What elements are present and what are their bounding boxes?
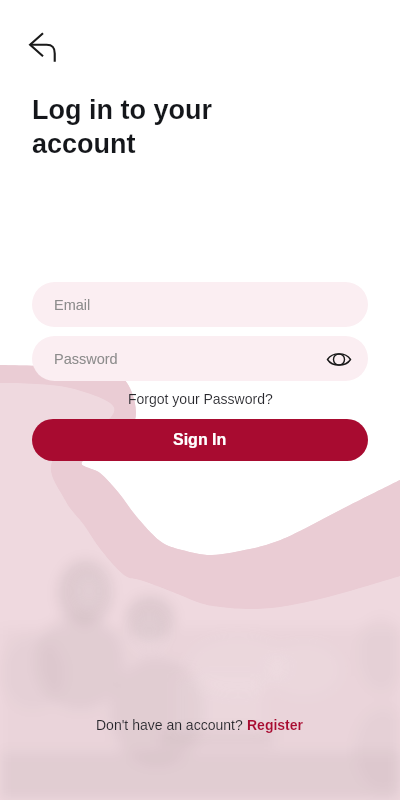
button[interactable]: Register bbox=[247, 717, 304, 733]
staticText: Email bbox=[54, 297, 91, 313]
button[interactable]: Password bbox=[32, 336, 368, 381]
button[interactable]: Forgot your Password? bbox=[0, 388, 400, 410]
button[interactable]: Email bbox=[32, 282, 368, 327]
staticText: Password bbox=[54, 351, 118, 367]
staticText: Log in to your account bbox=[32, 95, 212, 159]
staticText: Register bbox=[247, 717, 304, 733]
button[interactable]: Sign In bbox=[32, 419, 368, 461]
button[interactable]: Show password bbox=[324, 344, 354, 374]
staticText: Don't have an account? bbox=[96, 717, 247, 733]
staticText: Forgot your Password? bbox=[128, 391, 273, 407]
staticText: Sign In bbox=[173, 431, 227, 449]
button[interactable]: Back bbox=[20, 24, 66, 70]
